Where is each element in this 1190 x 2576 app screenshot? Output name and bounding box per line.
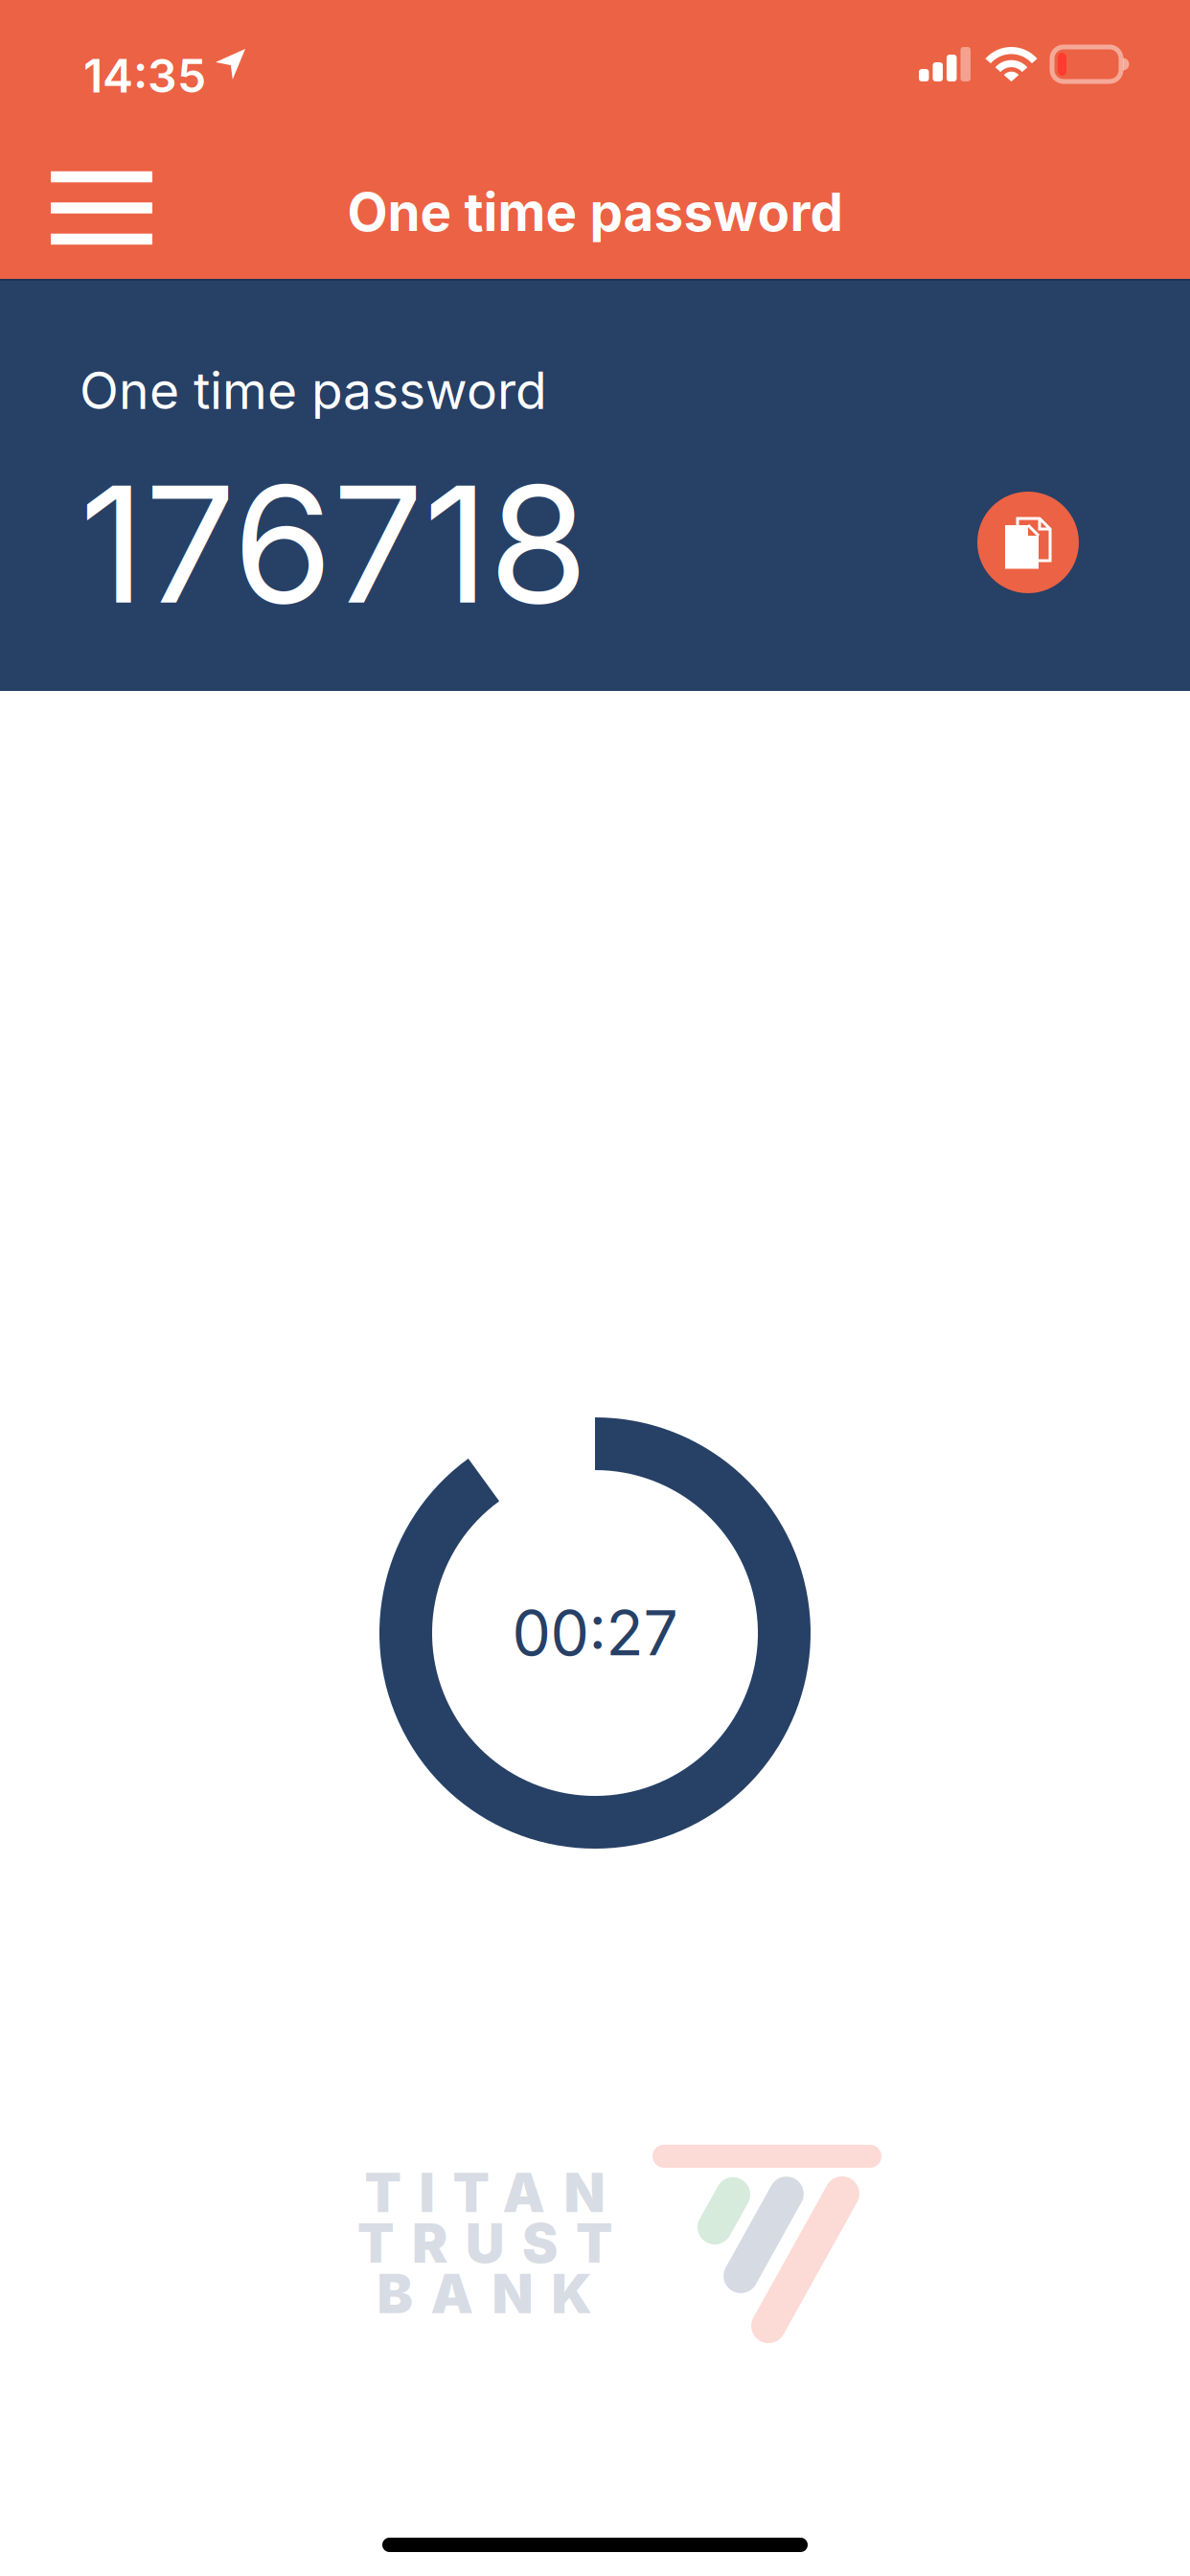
staticText: 00:27	[512, 1596, 678, 1670]
staticText: TITAN	[365, 2160, 605, 2225]
button[interactable]: Menu	[18, 137, 185, 279]
staticText: 14:35	[83, 48, 206, 104]
staticText: One time password	[80, 359, 547, 421]
staticText: 176718	[80, 447, 588, 641]
staticText: TRUST	[357, 2211, 612, 2276]
staticText: One time password	[347, 180, 843, 243]
button[interactable]: Copy one time password	[977, 492, 1079, 593]
staticText: BANK	[377, 2261, 593, 2326]
